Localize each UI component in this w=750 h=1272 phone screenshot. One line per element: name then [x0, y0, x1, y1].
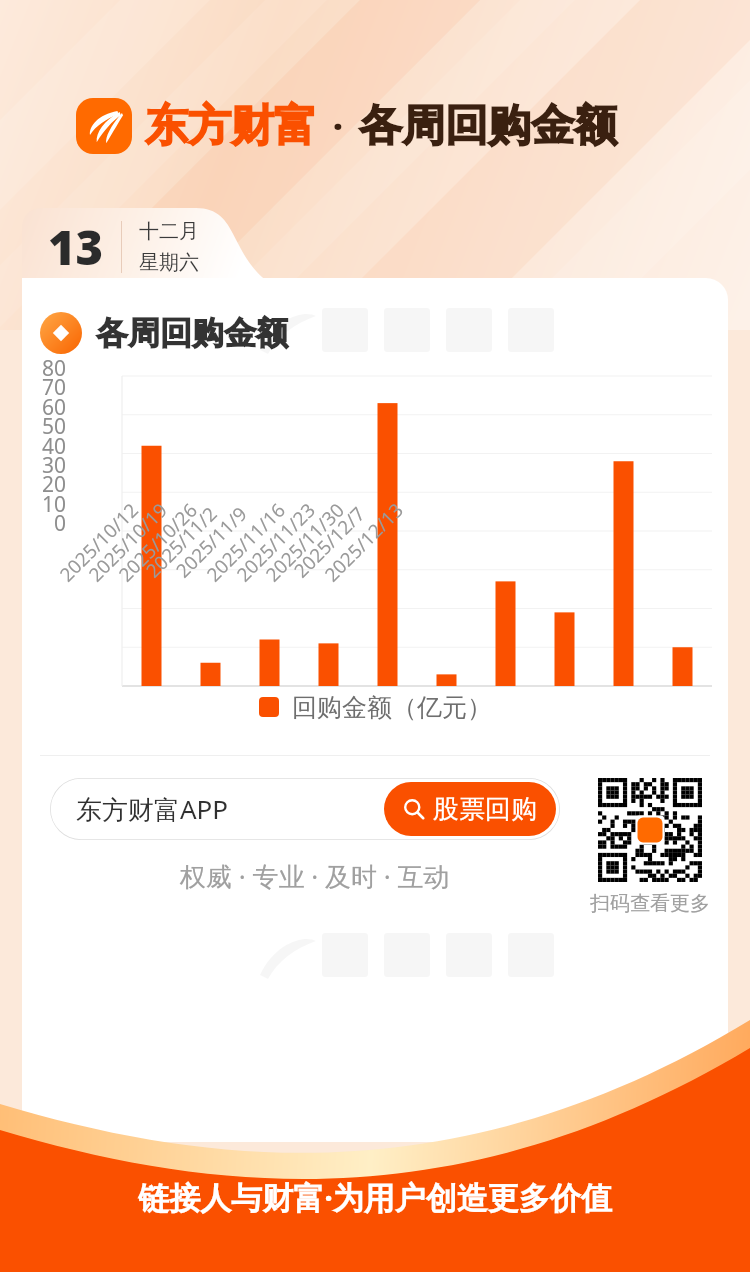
button[interactable]: 东方财富APP: [50, 778, 560, 840]
staticText: 权威 · 专业 · 及时 · 互动: [180, 858, 450, 894]
staticText: 0: [28, 509, 66, 538]
staticText: 2025/10/19: [83, 497, 173, 587]
staticText: 2025/12/13: [319, 497, 409, 587]
staticText: 70: [28, 373, 66, 402]
button[interactable]: 扫码查看更多二维码: [598, 778, 702, 882]
staticText: 链接人与财富·为用户创造更多价值: [138, 1176, 612, 1218]
staticText: ·: [333, 103, 343, 149]
staticText: 十二月: [139, 219, 199, 244]
staticText: 2025/10/12: [54, 497, 144, 587]
staticText: 东方财富APP: [76, 791, 229, 827]
staticText: 20: [28, 470, 66, 499]
button[interactable]: 股票回购: [384, 782, 556, 836]
staticText: 2025/11/16: [201, 497, 291, 587]
staticText: 各周回购金额: [359, 99, 617, 153]
staticText: 股票回购: [433, 793, 537, 826]
staticText: 2025/11/30: [260, 497, 350, 587]
staticText: 30: [28, 451, 66, 480]
staticText: 80: [28, 354, 66, 383]
staticText: 60: [28, 393, 66, 422]
staticText: 10: [28, 490, 66, 519]
staticText: 2025/11/9: [170, 501, 253, 583]
staticText: 50: [28, 412, 66, 441]
staticText: 东方财富: [145, 99, 317, 153]
staticText: 扫码查看更多: [590, 891, 710, 916]
staticText: 2025/10/26: [113, 497, 203, 587]
staticText: 2025/12/7: [288, 501, 371, 583]
other: 东方财富 logo: [76, 98, 132, 154]
staticText: 星期六: [139, 250, 199, 275]
staticText: 回购金额（亿元）: [292, 692, 492, 723]
staticText: 13: [48, 215, 104, 279]
staticText: 2025/11/2: [140, 501, 223, 583]
staticText: 2025/11/23: [231, 497, 321, 587]
staticText: 40: [28, 432, 66, 461]
staticText: 各周回购金额: [96, 313, 288, 353]
